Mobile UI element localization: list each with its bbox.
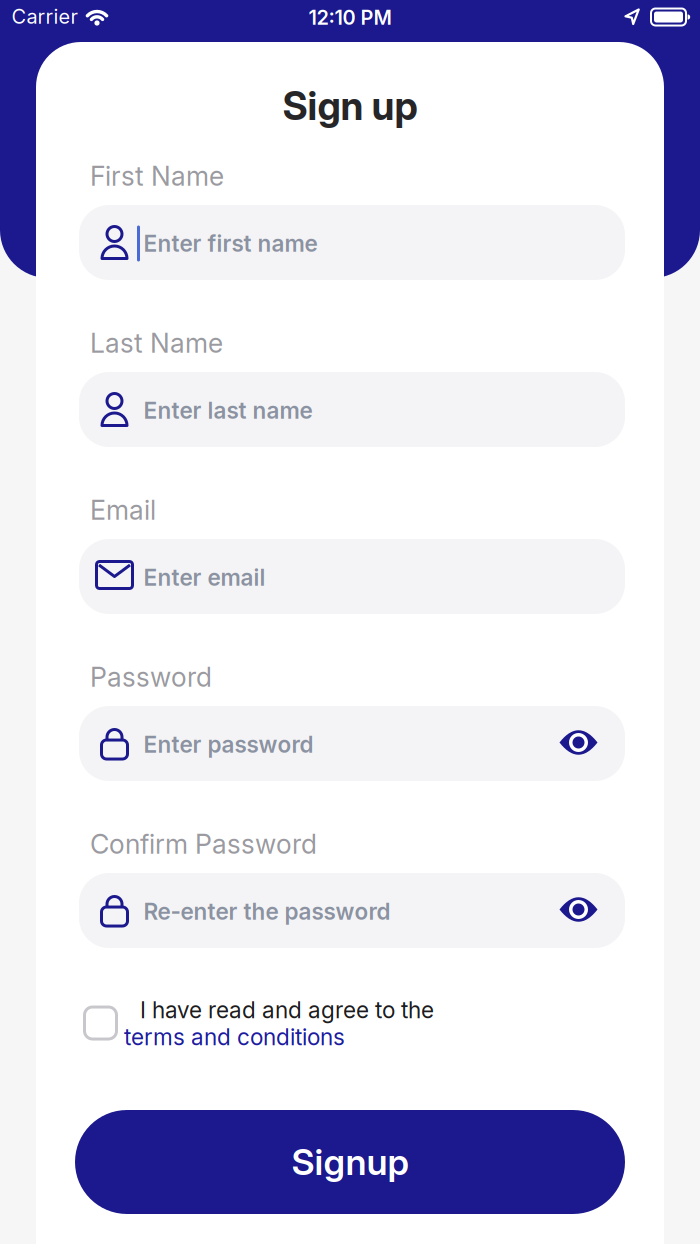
staticText: Last Name xyxy=(90,327,223,359)
button[interactable]: Enter first name xyxy=(79,205,625,280)
button[interactable]: Enter email xyxy=(79,539,625,614)
button[interactable]: Show password xyxy=(559,730,597,755)
staticText: Enter last name xyxy=(143,397,312,424)
button[interactable]: Show password xyxy=(559,897,597,922)
staticText: Enter password xyxy=(143,731,313,758)
button[interactable]: Signup xyxy=(75,1110,625,1214)
staticText: First Name xyxy=(90,160,224,192)
staticText: 12:10 PM xyxy=(308,6,391,29)
staticText: Email xyxy=(90,494,156,526)
staticText: Enter first name xyxy=(143,230,317,257)
button[interactable]: Enter last name xyxy=(79,372,625,447)
staticText: Sign up xyxy=(282,83,417,129)
button[interactable]: Re-enter the password xyxy=(79,873,625,948)
staticText: Re-enter the password xyxy=(143,898,390,925)
staticText: Signup xyxy=(291,1141,408,1183)
staticText: Enter email xyxy=(143,564,265,591)
staticText: Password xyxy=(90,661,212,693)
staticText: Confirm Password xyxy=(90,828,317,860)
staticText: I have read and agree to the xyxy=(140,997,434,1023)
staticText: Carrier xyxy=(11,5,77,28)
button[interactable]: Agree to terms and conditions xyxy=(84,1007,116,1039)
button[interactable]: terms and conditions xyxy=(124,1024,345,1050)
button[interactable]: Enter password xyxy=(79,706,625,781)
staticText: terms and conditions xyxy=(124,1024,345,1050)
